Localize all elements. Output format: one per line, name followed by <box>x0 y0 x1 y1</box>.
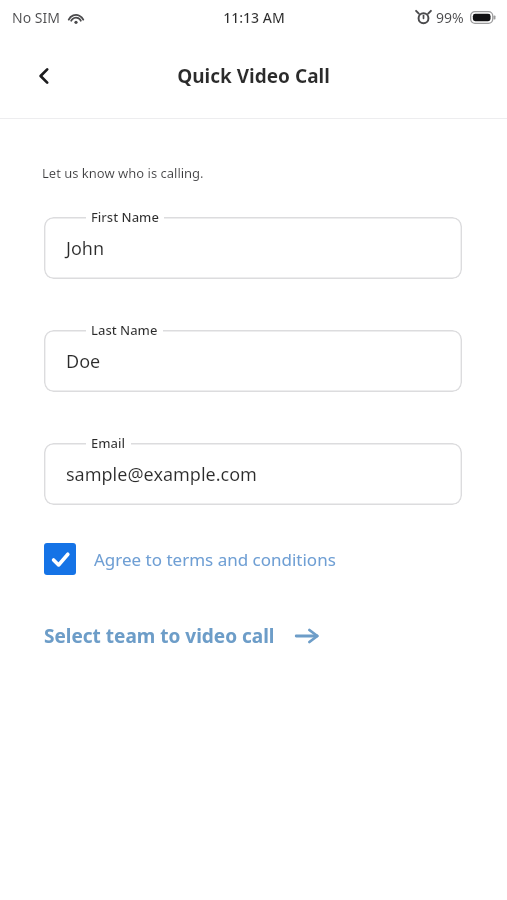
button[interactable]: Agree to terms and conditions <box>44 543 336 575</box>
staticText: 11:13 AM <box>223 8 285 27</box>
staticText: John <box>66 236 105 261</box>
staticText: First Name <box>91 208 159 226</box>
staticText: Agree to terms and conditions <box>94 548 336 571</box>
staticText: Email <box>91 434 126 452</box>
staticText: Doe <box>66 349 101 374</box>
staticText: No SIM <box>12 8 60 27</box>
staticText: sample@example.com <box>66 462 257 487</box>
button[interactable]: John <box>44 207 462 279</box>
staticText: 99% <box>436 8 464 27</box>
staticText: Select team to video call <box>44 623 275 649</box>
staticText: Quick Video Call <box>177 63 330 89</box>
button[interactable]: Select team to video call <box>44 623 319 649</box>
staticText: Last Name <box>91 321 158 339</box>
button[interactable]: Doe <box>44 320 462 392</box>
staticText: Let us know who is calling. <box>42 164 204 182</box>
button[interactable]: sample@example.com <box>44 433 462 505</box>
button[interactable]: Back <box>22 54 66 98</box>
